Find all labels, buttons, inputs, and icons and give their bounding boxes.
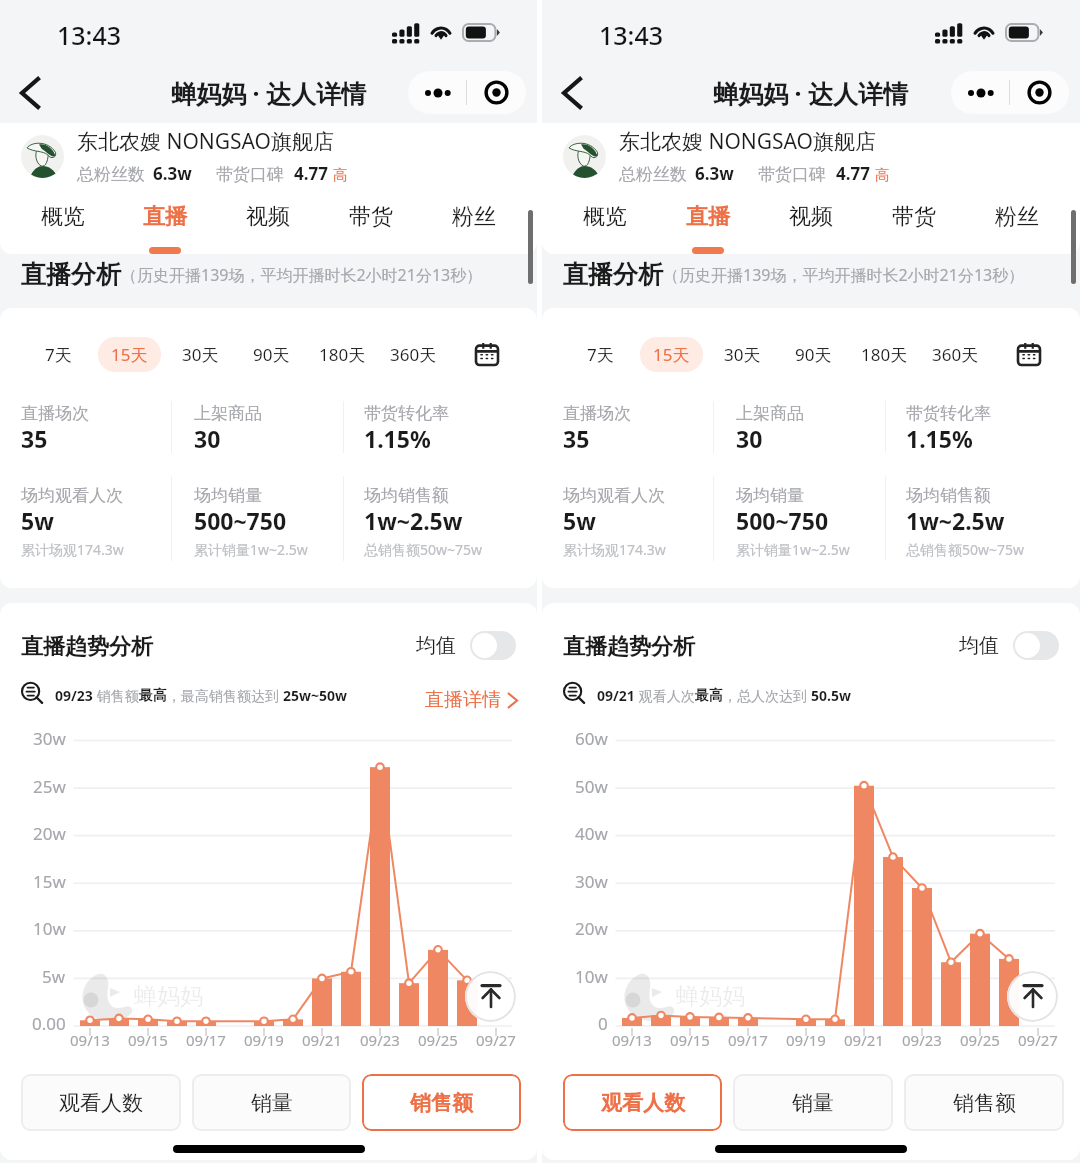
staticText: 1w~2.5w (364, 505, 463, 536)
staticText: 30天 (182, 343, 219, 366)
button[interactable]: 观看人数 (21, 1074, 181, 1131)
button[interactable]: 概览 (554, 195, 656, 244)
staticText: 10w (575, 965, 608, 988)
staticText: 观看人数 (59, 1090, 143, 1116)
staticText: 180天 (319, 343, 366, 366)
staticText: 带货口碑 (758, 164, 826, 185)
button[interactable]: Mini program menu (467, 71, 526, 114)
staticText: 高 (333, 166, 348, 185)
staticText: 累计销量1w~2.5w (194, 540, 308, 559)
button[interactable]: 粉丝 (422, 195, 525, 244)
staticText: 总销售额50w~75w (364, 540, 483, 559)
staticText: 东北农嫂 NONGSAO旗舰店 (619, 127, 876, 156)
button[interactable]: 直播 (114, 195, 216, 244)
staticText: 09/21 (597, 686, 635, 705)
staticText: 视频 (789, 203, 833, 231)
staticText: 09/13 (612, 1030, 652, 1050)
staticText: 销售额 (410, 1090, 473, 1116)
staticText: 场均销售额 (364, 485, 449, 506)
staticText: 500~750 (736, 505, 829, 536)
staticText: 带货 (892, 203, 936, 231)
staticText: 销售额 (93, 686, 139, 705)
button[interactable]: 观看人数 (563, 1074, 722, 1131)
staticText: 累计场观174.3w (21, 540, 124, 559)
button[interactable]: 直播 (656, 195, 759, 244)
staticText: 均值 (416, 633, 456, 658)
button[interactable]: 销售额 (362, 1074, 521, 1131)
staticText: 均值 (959, 633, 999, 658)
button[interactable]: 15天 (98, 337, 161, 372)
staticText: 90天 (253, 343, 290, 366)
button[interactable]: 30天 (711, 337, 774, 372)
button[interactable]: Back (8, 71, 52, 115)
staticText: ，最高销售额达到 (167, 686, 283, 705)
staticText: 总粉丝数 (77, 164, 145, 185)
staticText: 4.77 (836, 162, 870, 185)
button[interactable]: 30天 (169, 337, 232, 372)
button[interactable]: 概览 (12, 195, 114, 244)
staticText: 30w (575, 870, 608, 893)
staticText: 09/21 (302, 1030, 342, 1050)
staticText: 直播分析 (21, 259, 121, 290)
staticText: 直播分析 (563, 259, 663, 290)
staticText: 1.15% (906, 423, 973, 454)
staticText: 带货 (349, 203, 393, 231)
staticText: 概览 (41, 203, 85, 231)
button[interactable]: Scroll to top (1007, 971, 1058, 1022)
button[interactable]: 360天 (919, 337, 992, 372)
button[interactable]: 7天 (32, 337, 85, 372)
staticText: 蝉妈妈 (134, 982, 203, 1011)
staticText: 360天 (932, 343, 979, 366)
button[interactable]: Pick date (1012, 337, 1046, 371)
button[interactable]: 180天 (848, 337, 921, 372)
staticText: 20w (33, 822, 66, 845)
staticText: 09/27 (1018, 1030, 1058, 1050)
button[interactable]: 带货 (862, 195, 965, 244)
button[interactable]: 粉丝 (965, 195, 1068, 244)
button[interactable]: More (951, 71, 1009, 114)
button[interactable]: 90天 (782, 337, 845, 372)
staticText: 直播场次 (21, 403, 89, 424)
button[interactable]: 90天 (240, 337, 303, 372)
button[interactable]: 15天 (640, 337, 703, 372)
button[interactable]: Scroll to top (465, 971, 516, 1022)
staticText: 概览 (583, 203, 627, 231)
button[interactable]: Average toggle (470, 631, 516, 660)
staticText: 30天 (724, 343, 761, 366)
staticText: （历史开播139场，平均开播时长2小时21分13秒） (663, 264, 1025, 286)
staticText: 直播场次 (563, 403, 631, 424)
staticText: 1w~2.5w (906, 505, 1005, 536)
button[interactable]: 销量 (733, 1074, 893, 1131)
button[interactable]: Back (550, 71, 594, 115)
staticText: 带货转化率 (364, 403, 449, 424)
staticText: 6.3w (153, 162, 192, 185)
button[interactable]: 销量 (192, 1074, 351, 1131)
staticText: 50w (575, 775, 608, 798)
button[interactable]: More (408, 71, 466, 114)
staticText: 09/19 (244, 1030, 284, 1050)
button[interactable]: 销售额 (904, 1074, 1064, 1131)
staticText: 60w (575, 727, 608, 750)
button[interactable]: Average toggle (1013, 631, 1059, 660)
staticText: 90天 (795, 343, 832, 366)
staticText: 高 (875, 166, 890, 185)
button[interactable]: 7天 (574, 337, 627, 372)
staticText: 最高 (139, 687, 167, 705)
staticText: 180天 (861, 343, 908, 366)
staticText: ，总人次达到 (723, 686, 811, 705)
button[interactable]: 带货 (319, 195, 422, 244)
button[interactable]: Mini program menu (1010, 71, 1069, 114)
staticText: 09/27 (476, 1030, 516, 1050)
button[interactable]: 视频 (759, 195, 862, 244)
button[interactable]: Pick date (470, 337, 504, 371)
staticText: 视频 (246, 203, 290, 231)
staticText: 35 (21, 423, 48, 454)
button[interactable]: 180天 (306, 337, 379, 372)
staticText: 09/25 (418, 1030, 458, 1050)
button[interactable]: 360天 (377, 337, 450, 372)
button[interactable]: 直播详情 (425, 688, 517, 712)
button[interactable]: 视频 (216, 195, 319, 244)
staticText: 5w (563, 505, 596, 536)
staticText: 09/13 (70, 1030, 110, 1050)
staticText: 场均销量 (194, 485, 262, 506)
